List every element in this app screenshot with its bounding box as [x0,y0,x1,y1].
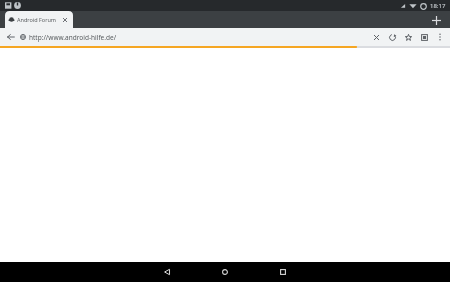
button[interactable]: New tab [428,12,444,28]
button[interactable]: Bookmark [400,29,416,45]
staticText: 18:17 [430,2,446,10]
button[interactable]: Clear [368,29,384,45]
button[interactable]: Back [4,30,18,44]
button[interactable]: More options [432,29,448,45]
staticText: Android Forum ( [17,16,59,23]
button[interactable]: Switch tabs [416,29,432,45]
staticText: http://www.android-hilfe.de/ [29,33,117,42]
button[interactable]: Recent apps [270,262,296,282]
button[interactable]: Back [154,262,180,282]
button[interactable]: Home [212,262,238,282]
button[interactable]: http://www.android-hilfe.de/ [20,28,368,46]
button[interactable]: Android Forum ( [5,11,73,28]
button[interactable]: Reload [384,29,400,45]
button[interactable]: Close tab [61,16,69,24]
